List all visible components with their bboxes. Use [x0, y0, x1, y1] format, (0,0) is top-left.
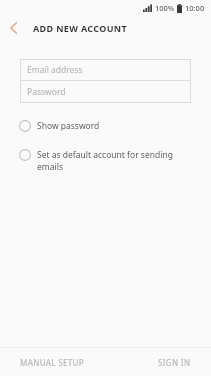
staticText: SIGN IN — [158, 357, 191, 368]
staticText: MANUAL SETUP — [20, 357, 84, 368]
button[interactable]: Show password — [0, 116, 211, 136]
button[interactable]: Email address — [20, 59, 191, 81]
staticText: ADD NEW ACCOUNT — [33, 22, 128, 34]
staticText: Email address — [27, 64, 83, 76]
button[interactable]: SIGN IN — [148, 351, 211, 374]
staticText: Password — [27, 86, 66, 98]
button[interactable]: Set as default account for sending email… — [0, 145, 211, 175]
staticText: Set as default account for sending email… — [37, 149, 189, 173]
staticText: Show password — [37, 120, 100, 132]
button[interactable]: Password — [20, 81, 191, 103]
staticText: 10:00 — [185, 3, 205, 13]
button[interactable]: Navigate up — [0, 16, 26, 40]
staticText: 100% — [155, 3, 175, 13]
button[interactable]: MANUAL SETUP — [0, 351, 94, 374]
